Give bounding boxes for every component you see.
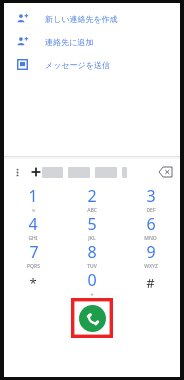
button[interactable]: 9 bbox=[121, 241, 180, 269]
staticText: JKL bbox=[88, 235, 96, 241]
staticText: 8 bbox=[87, 241, 97, 263]
button[interactable]: 連絡先に追加 bbox=[4, 30, 180, 53]
staticText: + bbox=[90, 291, 94, 297]
staticText: MNO bbox=[144, 235, 157, 241]
staticText: 9 bbox=[146, 241, 156, 263]
staticText: 6 bbox=[146, 213, 156, 235]
button[interactable]: # bbox=[121, 269, 180, 297]
button[interactable]: 6 bbox=[121, 213, 180, 241]
button[interactable]: 2 bbox=[62, 185, 121, 213]
button[interactable]: 1 bbox=[4, 185, 62, 213]
button[interactable]: 発信 bbox=[79, 305, 106, 332]
staticText: WXYZ bbox=[144, 263, 158, 269]
staticText: * bbox=[29, 274, 37, 292]
staticText: 1 bbox=[28, 185, 38, 207]
button[interactable]: 5 bbox=[62, 213, 121, 241]
button[interactable]: 4 bbox=[4, 213, 62, 241]
staticText: メッセージを送信 bbox=[45, 60, 110, 70]
staticText: TUV bbox=[87, 263, 97, 269]
staticText: DEF bbox=[146, 207, 156, 213]
staticText: # bbox=[146, 274, 155, 292]
button[interactable]: 削除 bbox=[154, 161, 176, 183]
staticText: PQRS bbox=[27, 263, 40, 269]
staticText: 新しい連絡先を作成 bbox=[45, 14, 118, 24]
staticText: 3 bbox=[146, 185, 156, 207]
staticText: 7 bbox=[29, 241, 39, 263]
button[interactable]: 新しい連絡先を作成 bbox=[4, 7, 180, 30]
staticText: 4 bbox=[28, 213, 38, 235]
staticText: 連絡先に追加 bbox=[45, 37, 94, 47]
button[interactable]: メッセージを送信 bbox=[4, 53, 180, 76]
staticText: ABC bbox=[87, 207, 97, 213]
button[interactable]: * bbox=[4, 269, 62, 297]
staticText: ∞ bbox=[31, 207, 36, 213]
button[interactable]: 0 bbox=[62, 269, 121, 297]
button[interactable]: その他のオプション bbox=[10, 165, 25, 180]
button[interactable]: 8 bbox=[62, 241, 121, 269]
button[interactable]: 7 bbox=[4, 241, 62, 269]
staticText: GHI bbox=[28, 235, 38, 241]
staticText: 2 bbox=[87, 185, 97, 207]
staticText: 5 bbox=[87, 213, 97, 235]
staticText: 0 bbox=[87, 269, 97, 291]
button[interactable]: 3 bbox=[121, 185, 180, 213]
